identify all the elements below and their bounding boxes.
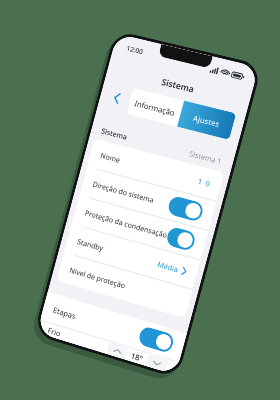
button[interactable]: Increase — [106, 342, 129, 360]
staticText: Direção do sistema — [92, 179, 155, 205]
staticText: Ajustes — [192, 112, 221, 129]
button[interactable]: Toggle — [137, 325, 175, 354]
staticText: Frio — [47, 324, 63, 339]
button[interactable]: Standby — [64, 224, 201, 289]
staticText: Sistema — [160, 75, 196, 95]
staticText: 1 0 — [197, 176, 212, 189]
button[interactable]: Proteção da condensação — [72, 196, 208, 260]
staticText: 12:00 — [125, 44, 144, 57]
button[interactable]: Decrease — [145, 354, 169, 372]
staticText: Média — [157, 259, 179, 274]
button[interactable]: Nome — [87, 138, 224, 201]
staticText: Sistema — [100, 126, 129, 142]
staticText: Nível de proteção — [69, 265, 127, 290]
button[interactable]: Nível de proteção — [56, 253, 193, 318]
staticText: Etapas — [52, 304, 78, 321]
button[interactable]: Toggle — [166, 195, 205, 223]
button[interactable]: Back — [108, 88, 126, 107]
staticText: Informação — [133, 97, 176, 118]
button[interactable]: Frio — [37, 320, 179, 375]
button[interactable]: Etapas — [40, 292, 187, 362]
staticText: Standby — [76, 236, 105, 253]
button[interactable]: Informação — [126, 88, 184, 127]
staticText: Proteção da condensação — [84, 208, 169, 240]
staticText: Sistema 1 — [188, 148, 224, 166]
button[interactable]: Ajustes — [177, 100, 236, 140]
button[interactable]: Direção do sistema — [79, 167, 216, 230]
staticText: Nome — [99, 150, 122, 165]
staticText: 18° — [130, 350, 145, 364]
button[interactable]: Toggle — [165, 226, 197, 252]
